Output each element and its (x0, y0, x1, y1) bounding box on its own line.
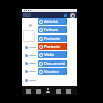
button[interactable]: Fattura (38, 26, 67, 33)
staticText: Paziente (44, 36, 61, 41)
staticText: Vaccino (44, 69, 59, 74)
button[interactable]: Vaccino (38, 68, 67, 75)
button[interactable] (22, 51, 77, 59)
button[interactable] (22, 67, 77, 75)
button[interactable]: Paziente (38, 35, 67, 42)
button[interactable]: Paziente (38, 43, 67, 50)
button[interactable]: Visita (38, 51, 67, 58)
staticText: Visita (44, 52, 55, 57)
button[interactable] (22, 76, 77, 84)
button[interactable]: Account (70, 13, 75, 18)
button[interactable]: Filter (64, 14, 67, 17)
button[interactable] (22, 59, 77, 67)
button[interactable]: Calendar (33, 86, 43, 95)
button[interactable]: Settings (63, 86, 73, 95)
button[interactable]: Documenti (38, 60, 67, 67)
staticText: Paziente (44, 44, 61, 49)
button[interactable]: Patients (43, 86, 53, 95)
button[interactable]: Home (23, 86, 33, 95)
button[interactable]: Documents (53, 86, 63, 95)
button[interactable]: Attività (38, 18, 67, 25)
staticText: Fattura (44, 27, 58, 32)
button[interactable] (22, 43, 77, 51)
staticText: Attività (44, 19, 58, 24)
staticText: Documenti (44, 61, 66, 66)
